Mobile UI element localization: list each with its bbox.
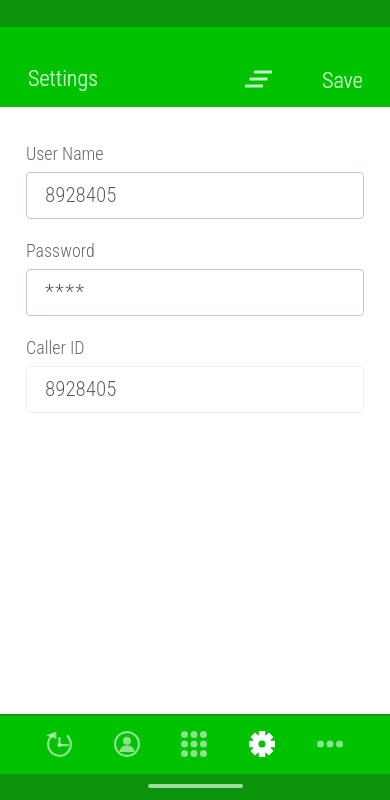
staticText: 8928405 xyxy=(45,377,117,402)
button[interactable]: Settings xyxy=(228,714,296,774)
button[interactable]: 8928405 xyxy=(26,172,364,219)
button[interactable]: Save xyxy=(314,63,371,99)
button[interactable]: 8928405 xyxy=(26,366,364,413)
staticText: Password xyxy=(26,240,95,261)
button[interactable]: **** xyxy=(26,269,364,316)
button[interactable]: Settings xyxy=(20,61,106,97)
staticText: Caller ID xyxy=(26,337,85,358)
button[interactable]: Sort xyxy=(237,57,281,87)
staticText: Save xyxy=(322,68,363,94)
staticText: **** xyxy=(45,280,86,305)
button[interactable]: Contacts xyxy=(93,714,161,774)
staticText: User Name xyxy=(26,143,104,164)
button[interactable]: More options xyxy=(296,714,364,774)
staticText: Settings xyxy=(28,66,98,92)
staticText: 8928405 xyxy=(45,183,117,208)
button[interactable]: Recents xyxy=(25,714,93,774)
button[interactable]: Dialpad xyxy=(160,714,228,774)
